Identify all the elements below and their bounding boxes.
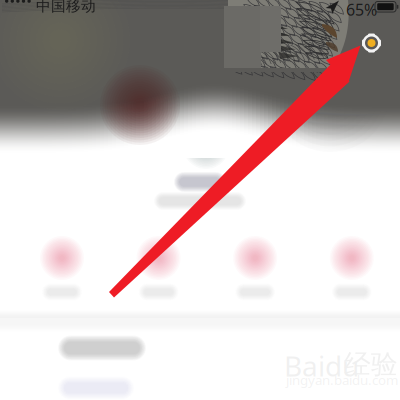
staticText: 中国移动	[36, 0, 96, 15]
button[interactable]	[0, 0, 94, 78]
staticText: 经验	[344, 348, 398, 381]
staticText: jingyan.baidu.com	[286, 371, 398, 389]
button[interactable]	[0, 0, 94, 78]
staticText: Baidu	[284, 347, 359, 384]
button[interactable]	[0, 0, 94, 78]
button[interactable]	[0, 0, 94, 78]
button[interactable]	[0, 0, 400, 36]
button[interactable]	[0, 0, 400, 40]
button[interactable]: Settings	[0, 0, 26, 26]
staticText: 65%	[346, 0, 377, 20]
